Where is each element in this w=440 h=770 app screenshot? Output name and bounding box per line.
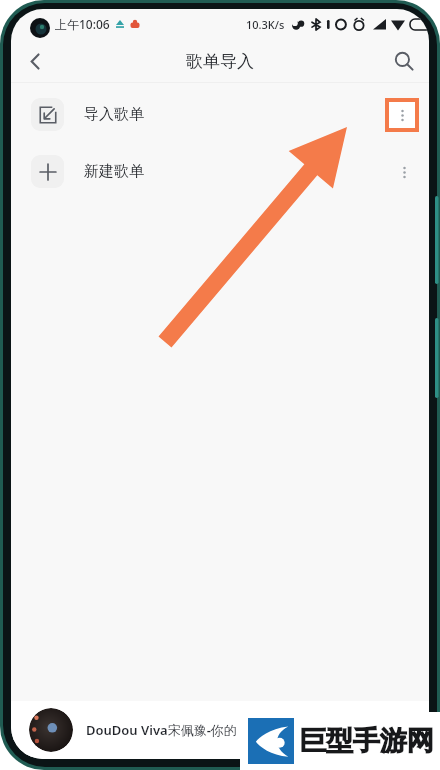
button[interactable]: More options xyxy=(389,102,415,128)
button[interactable]: 导入歌单 xyxy=(11,86,429,143)
staticText: 巨型手游网 xyxy=(299,724,434,758)
staticText: 导入歌单 xyxy=(84,105,144,124)
button[interactable]: DouDou Viva宋佩豫-你的 xyxy=(11,701,429,759)
button[interactable]: Search xyxy=(384,41,424,81)
staticText: 新建歌单 xyxy=(84,162,144,181)
staticText: 上午10:06 xyxy=(55,16,110,32)
staticText: 10.3K/s xyxy=(246,17,285,32)
staticText: 歌单导入 xyxy=(186,51,254,72)
button[interactable]: Back xyxy=(15,41,55,81)
button[interactable]: More options xyxy=(389,157,419,187)
button[interactable]: 新建歌单 xyxy=(11,143,429,200)
staticText: DouDou Viva宋佩豫-你的 xyxy=(86,721,237,739)
